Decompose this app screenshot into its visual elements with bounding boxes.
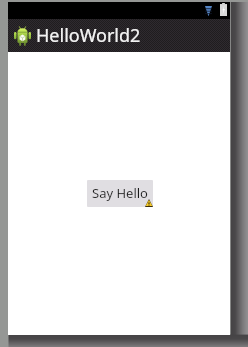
staticText: Say Hello <box>92 184 148 202</box>
button[interactable]: Say Hello <box>87 180 153 207</box>
staticText: HelloWorld2 <box>36 23 141 48</box>
